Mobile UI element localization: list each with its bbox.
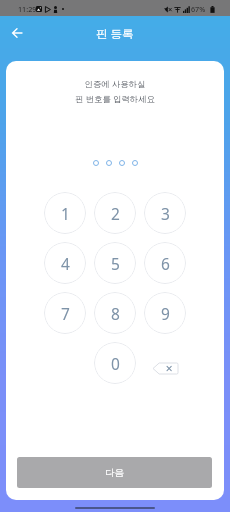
- staticText: 9: [161, 303, 170, 324]
- staticText: 3: [161, 203, 170, 224]
- button[interactable]: 2: [94, 192, 136, 234]
- button[interactable]: 5: [94, 242, 136, 284]
- button[interactable]: 8: [94, 292, 136, 334]
- staticText: 4: [61, 253, 70, 274]
- button[interactable]: 9: [144, 292, 186, 334]
- button[interactable]: 6: [144, 242, 186, 284]
- staticText: 핀 등록: [96, 26, 134, 42]
- staticText: 8: [111, 303, 120, 324]
- button[interactable]: 3: [144, 192, 186, 234]
- button[interactable]: 4: [44, 242, 86, 284]
- staticText: 11:29: [18, 4, 37, 14]
- button[interactable]: 1: [44, 192, 86, 234]
- button[interactable]: Back: [3, 19, 31, 47]
- staticText: 6: [161, 253, 170, 274]
- staticText: 7: [61, 303, 70, 324]
- button[interactable]: Backspace: [148, 357, 182, 379]
- button[interactable]: 7: [44, 292, 86, 334]
- staticText: 0: [111, 353, 120, 374]
- staticText: 5: [111, 253, 120, 274]
- staticText: 2: [111, 203, 120, 224]
- staticText: 인증에 사용하실 핀 번호를 입력하세요: [75, 78, 155, 105]
- staticText: 67%: [191, 4, 206, 14]
- button[interactable]: 0: [94, 342, 136, 384]
- staticText: 1: [61, 203, 70, 224]
- staticText: 다음: [105, 467, 124, 479]
- button[interactable]: 다음: [17, 457, 212, 488]
